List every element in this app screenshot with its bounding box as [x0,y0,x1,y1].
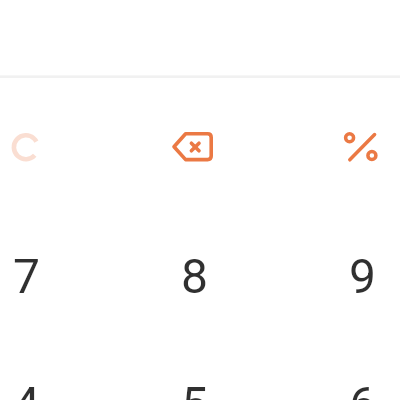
staticText: 9 [349,248,376,304]
button[interactable]: 8 [114,212,274,340]
button[interactable]: Backspace [114,82,274,210]
staticText: 5 [181,376,208,400]
button[interactable]: 9 [282,212,400,340]
button[interactable]: 4 [0,340,106,400]
staticText: 8 [181,248,208,304]
button[interactable]: 7 [0,212,106,340]
button[interactable]: Clear [0,82,106,210]
button[interactable]: 5 [114,340,274,400]
staticText: 6 [349,376,376,400]
staticText: 4 [13,376,40,400]
button[interactable]: 6 [282,340,400,400]
button[interactable]: Percent [282,82,400,210]
staticText: 7 [13,248,40,304]
